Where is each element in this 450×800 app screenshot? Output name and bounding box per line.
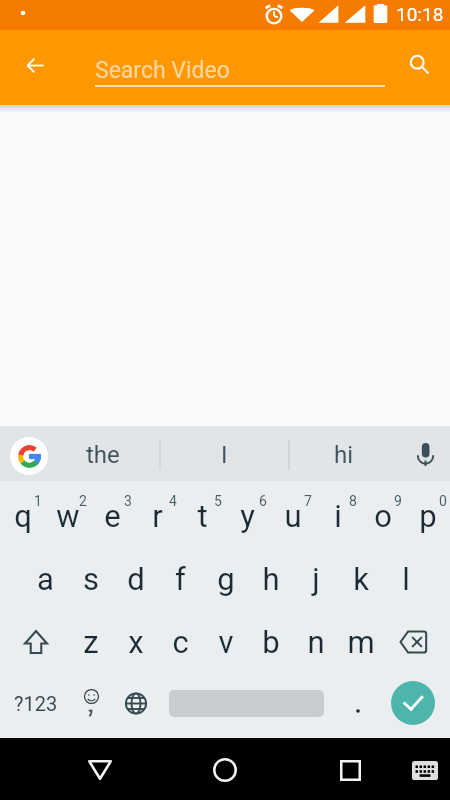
button[interactable]: Language [103,672,169,734]
button[interactable]: Backspace [380,611,446,673]
button[interactable]: Search [395,40,443,88]
button[interactable]: b [248,611,293,673]
staticText: t [197,498,208,534]
staticText: 10:18 [396,3,444,25]
staticText: u [284,498,302,534]
staticText: 5 [214,493,222,509]
staticText: k [353,561,369,597]
button[interactable]: y [225,485,270,547]
button[interactable]: h [248,548,293,610]
button[interactable]: m [338,611,383,673]
button[interactable]: Period [336,673,380,733]
button[interactable]: p [405,485,450,547]
staticText: z [83,624,99,660]
button[interactable]: Back [11,41,59,89]
staticText: v [218,624,234,660]
staticText: 2 [79,493,87,509]
button[interactable]: a [23,548,68,610]
button[interactable]: Home [197,742,253,798]
staticText: q [14,498,32,534]
staticText: x [128,624,144,660]
staticText: 1 [34,493,42,509]
staticText: n [307,624,325,660]
staticText: l [402,561,410,597]
staticText: 0 [439,493,447,509]
button[interactable]: e [90,485,135,547]
button[interactable]: t [180,485,225,547]
button[interactable]: Recents [322,742,378,798]
staticText: h [262,561,280,597]
staticText: o [374,498,392,534]
button[interactable]: Enter [391,681,435,725]
staticText: j [312,561,320,597]
staticText: f [175,561,186,597]
button[interactable]: c [158,611,203,673]
button[interactable]: r [135,485,180,547]
button[interactable]: Shift [3,611,69,673]
button[interactable]: i [315,485,360,547]
staticText: w [56,498,80,534]
button[interactable]: Google [10,437,48,475]
button[interactable]: z [68,611,113,673]
staticText: i [334,498,342,534]
button[interactable]: v [203,611,248,673]
staticText: I [221,441,228,469]
staticText: p [419,498,437,534]
staticText: y [240,498,255,534]
button[interactable]: s [68,548,113,610]
button[interactable]: Keyboard [397,742,450,798]
button[interactable]: j [293,548,338,610]
button[interactable]: q [0,485,45,547]
button[interactable]: u [270,485,315,547]
staticText: 3 [124,493,132,509]
button[interactable]: n [293,611,338,673]
staticText: c [172,624,189,660]
button[interactable]: o [360,485,405,547]
button[interactable]: hi [294,426,394,481]
button[interactable]: Emoji [58,672,124,734]
staticText: b [262,624,280,660]
button[interactable]: ?123 [3,673,68,733]
button[interactable] [405,432,449,476]
staticText: s [83,561,99,597]
button[interactable]: Back [72,742,128,798]
staticText: hi [334,441,354,469]
staticText: d [127,561,145,597]
staticText: e [104,498,121,534]
button[interactable]: l [383,548,428,610]
button[interactable]: x [113,611,158,673]
button[interactable]: f [158,548,203,610]
button[interactable]: I [174,426,274,481]
staticText: 6 [259,493,267,509]
staticText: a [37,561,54,597]
other: Voice input [417,443,434,466]
staticText: Search Video [95,57,230,84]
staticText: 8 [349,493,357,509]
staticText: the [86,441,120,469]
staticText: 4 [169,493,177,509]
button[interactable]: w [45,485,90,547]
staticText: r [152,498,163,534]
staticText: g [217,561,235,597]
button[interactable]: Search Video [95,54,385,87]
button[interactable]: k [338,548,383,610]
button[interactable]: g [203,548,248,610]
staticText: 7 [304,493,312,509]
button[interactable]: d [113,548,158,610]
button[interactable]: the [53,426,153,481]
staticText: m [347,624,375,660]
staticText: 9 [394,493,402,509]
staticText: ?123 [14,692,58,715]
